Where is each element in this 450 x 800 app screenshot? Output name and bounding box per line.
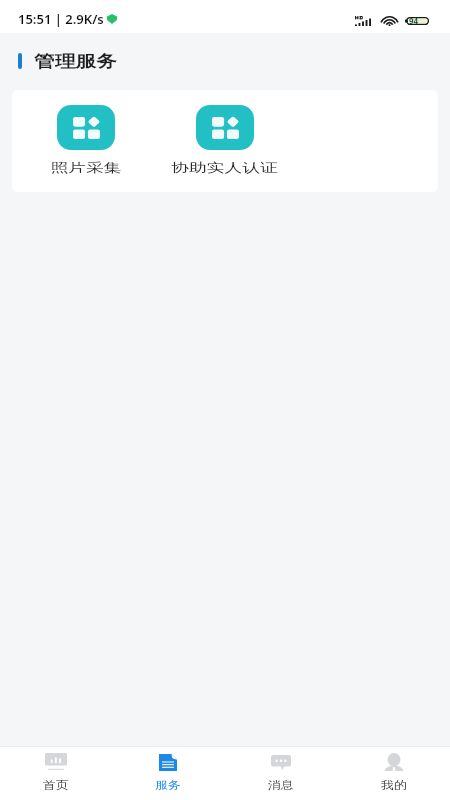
staticText: 管理服务 — [34, 51, 116, 72]
button[interactable]: 协助实人认证 — [155, 105, 294, 176]
staticText: 15:51 | 2.9K/s — [18, 10, 104, 28]
button[interactable]: 服务 — [112, 747, 224, 800]
button[interactable]: 首页 — [0, 747, 112, 800]
button[interactable]: 照片采集 — [17, 105, 155, 176]
staticText: 协助实人认证 — [171, 160, 278, 176]
staticText: 照片采集 — [50, 160, 121, 176]
staticText: 我的 — [381, 778, 407, 792]
staticText: 服务 — [155, 778, 181, 792]
staticText: 94 — [409, 15, 419, 26]
button[interactable]: 消息 — [224, 747, 337, 800]
staticText: 消息 — [268, 778, 294, 792]
button[interactable]: 我的 — [337, 747, 450, 800]
staticText: 首页 — [43, 778, 69, 792]
